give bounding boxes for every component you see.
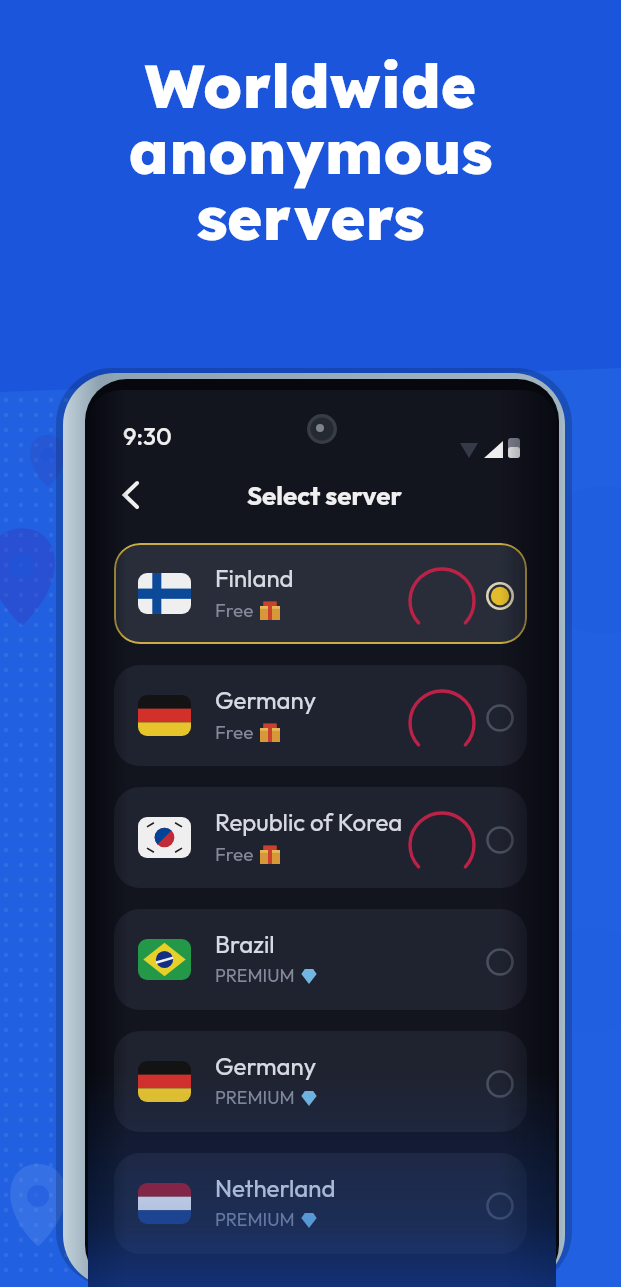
button[interactable]: Back — [109, 473, 153, 517]
staticText: PREMIUM — [215, 1086, 295, 1109]
button[interactable]: Netherland — [114, 1153, 527, 1254]
button[interactable]: Republic of Korea — [114, 787, 527, 888]
staticText: Free — [215, 720, 254, 744]
staticText: Worldwide anonymous servers — [0, 48, 621, 255]
staticText: Republic of Korea — [215, 807, 403, 837]
staticText: Finland — [215, 563, 294, 593]
staticText: Free — [215, 842, 254, 866]
staticText: PREMIUM — [215, 1208, 295, 1231]
button[interactable]: Germany — [114, 665, 527, 766]
button[interactable]: Finland — [114, 543, 527, 644]
button[interactable]: Germany — [114, 1031, 527, 1132]
staticText: Germany — [215, 1051, 317, 1081]
staticText: Brazil — [215, 929, 275, 959]
staticText: Germany — [215, 685, 317, 715]
staticText: Netherland — [215, 1173, 336, 1203]
staticText: PREMIUM — [215, 964, 295, 987]
staticText: 9:30 — [123, 421, 172, 451]
button[interactable]: Brazil — [114, 909, 527, 1010]
staticText: Select server — [247, 479, 402, 512]
staticText: Free — [215, 598, 254, 622]
